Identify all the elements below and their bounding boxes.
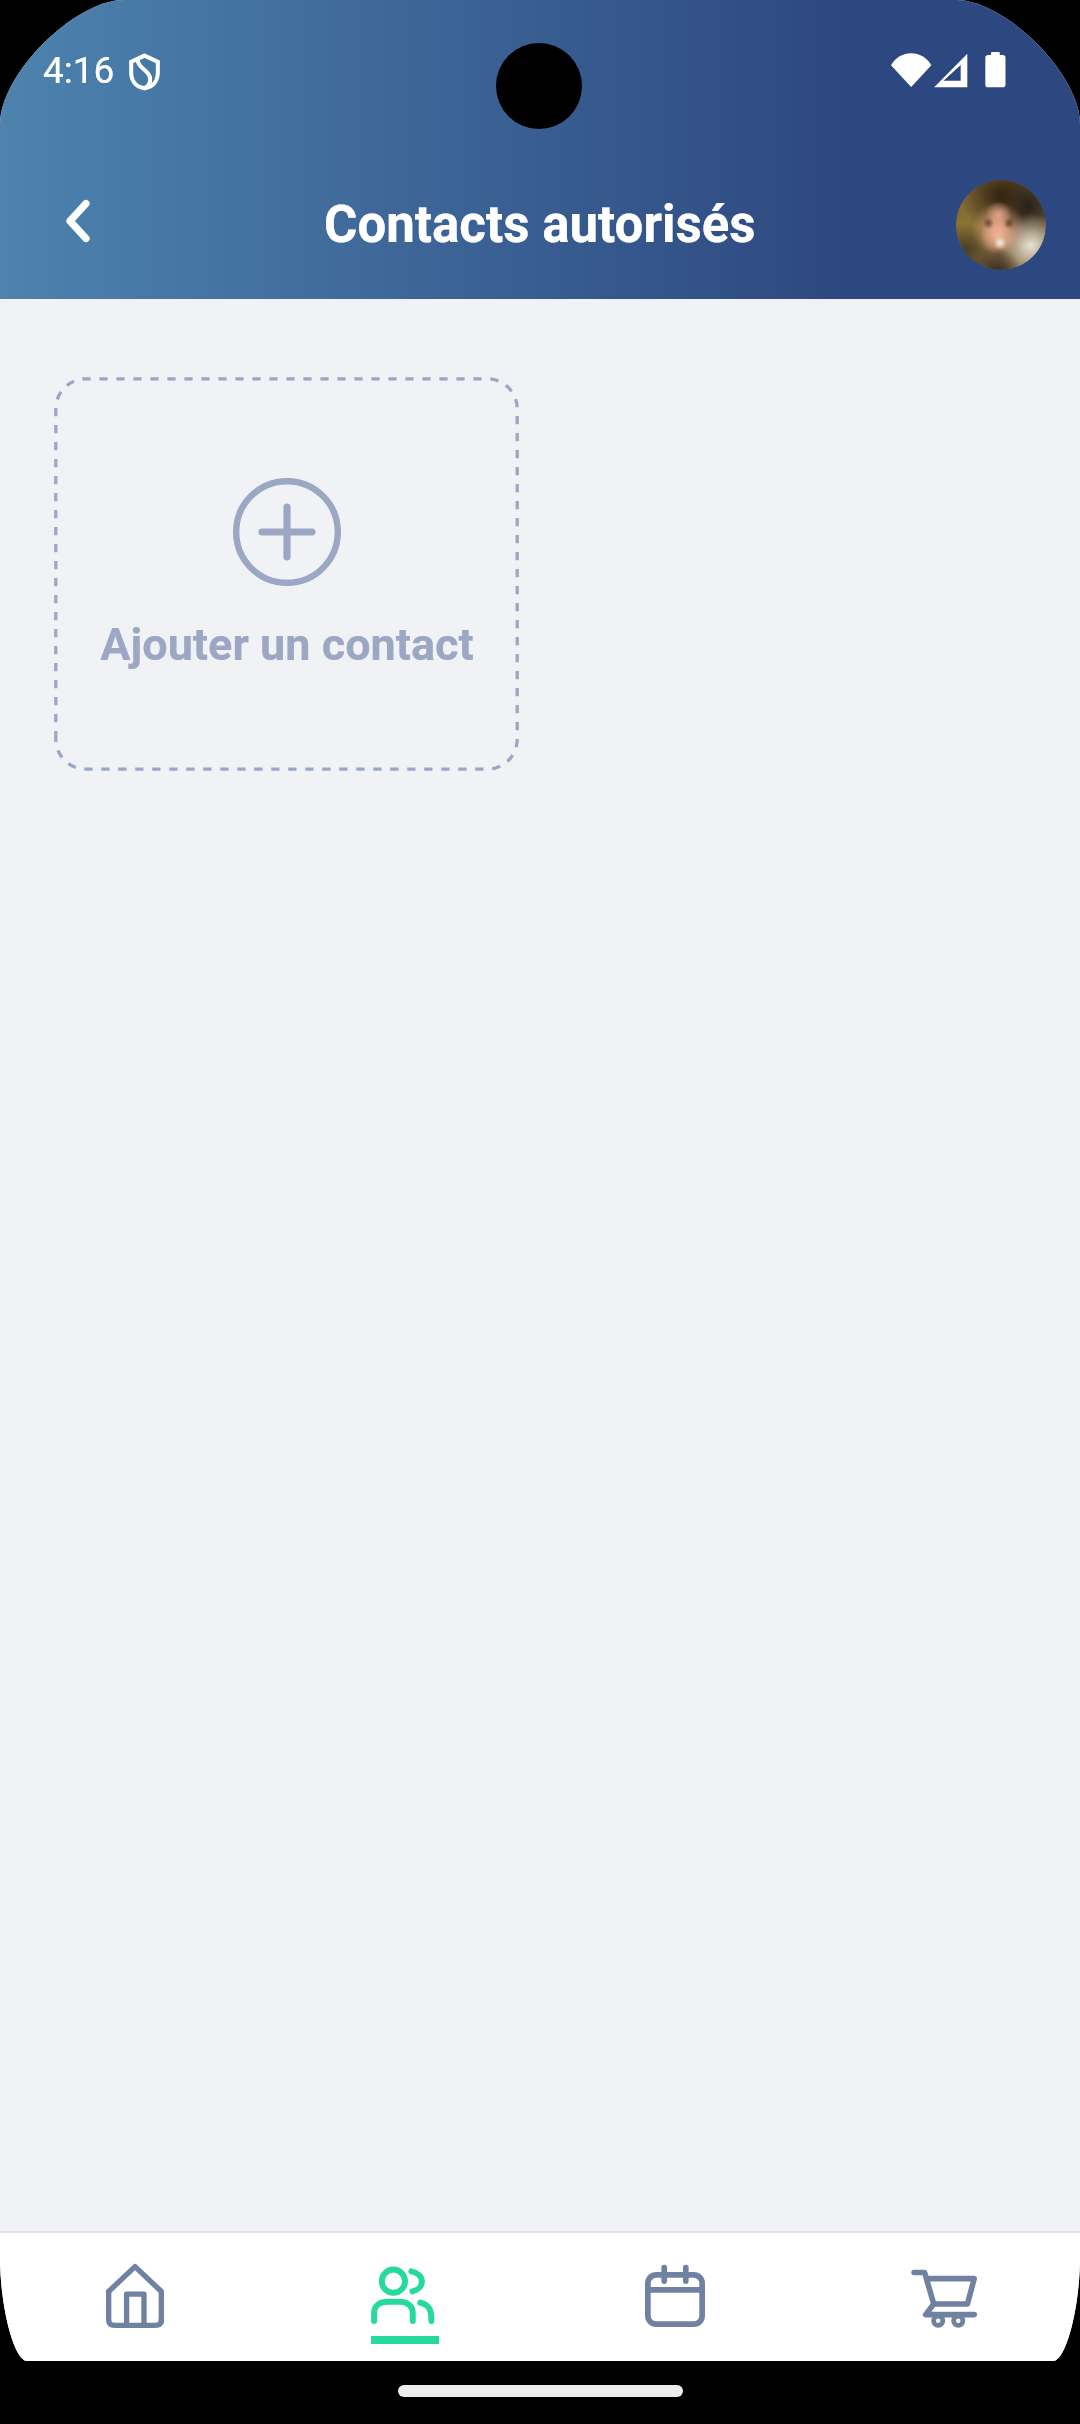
button[interactable]: Ajouter un contact [54,377,519,771]
button[interactable]: Calendar [540,2231,810,2361]
button[interactable]: Contacts [270,2231,540,2361]
button[interactable]: Cart [810,2231,1080,2361]
staticText: Ajouter un contact [100,618,474,671]
staticText: Contacts autorisés [324,195,756,255]
staticText: 4:16 [43,49,115,92]
button[interactable]: Profile [956,180,1046,270]
button[interactable]: Back [40,183,116,259]
button[interactable]: Home [0,2231,270,2361]
